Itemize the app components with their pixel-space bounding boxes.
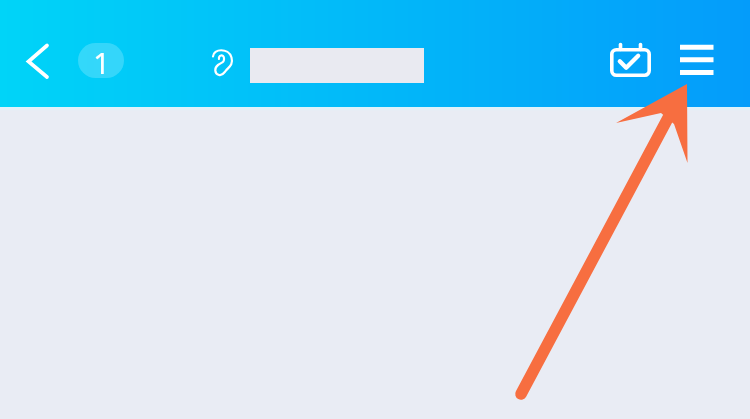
button[interactable]: Menu <box>674 40 720 86</box>
button[interactable]: Back <box>18 38 58 78</box>
button[interactable]: Listen <box>203 41 243 81</box>
staticText: 1 <box>93 43 110 78</box>
button[interactable]: 1 <box>78 43 124 78</box>
button[interactable]: Calendar <box>604 39 652 87</box>
